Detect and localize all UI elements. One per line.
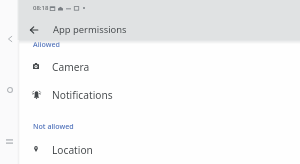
staticText: App permissions (53, 23, 127, 36)
staticText: Camera (52, 60, 90, 74)
button[interactable]: Home (0, 80, 19, 99)
staticText: 08:18 (33, 4, 49, 12)
button[interactable]: Notifications (19, 82, 300, 108)
button[interactable]: Back (0, 29, 19, 48)
staticText: Not allowed (33, 121, 74, 130)
button[interactable]: Location (19, 137, 300, 163)
staticText: Location (52, 143, 93, 157)
staticText: Notifications (52, 88, 113, 102)
staticText: Allowed (33, 39, 60, 48)
button[interactable]: Navigate up (21, 17, 46, 42)
button[interactable]: Recent apps (0, 132, 19, 151)
button[interactable]: Camera (19, 54, 300, 80)
